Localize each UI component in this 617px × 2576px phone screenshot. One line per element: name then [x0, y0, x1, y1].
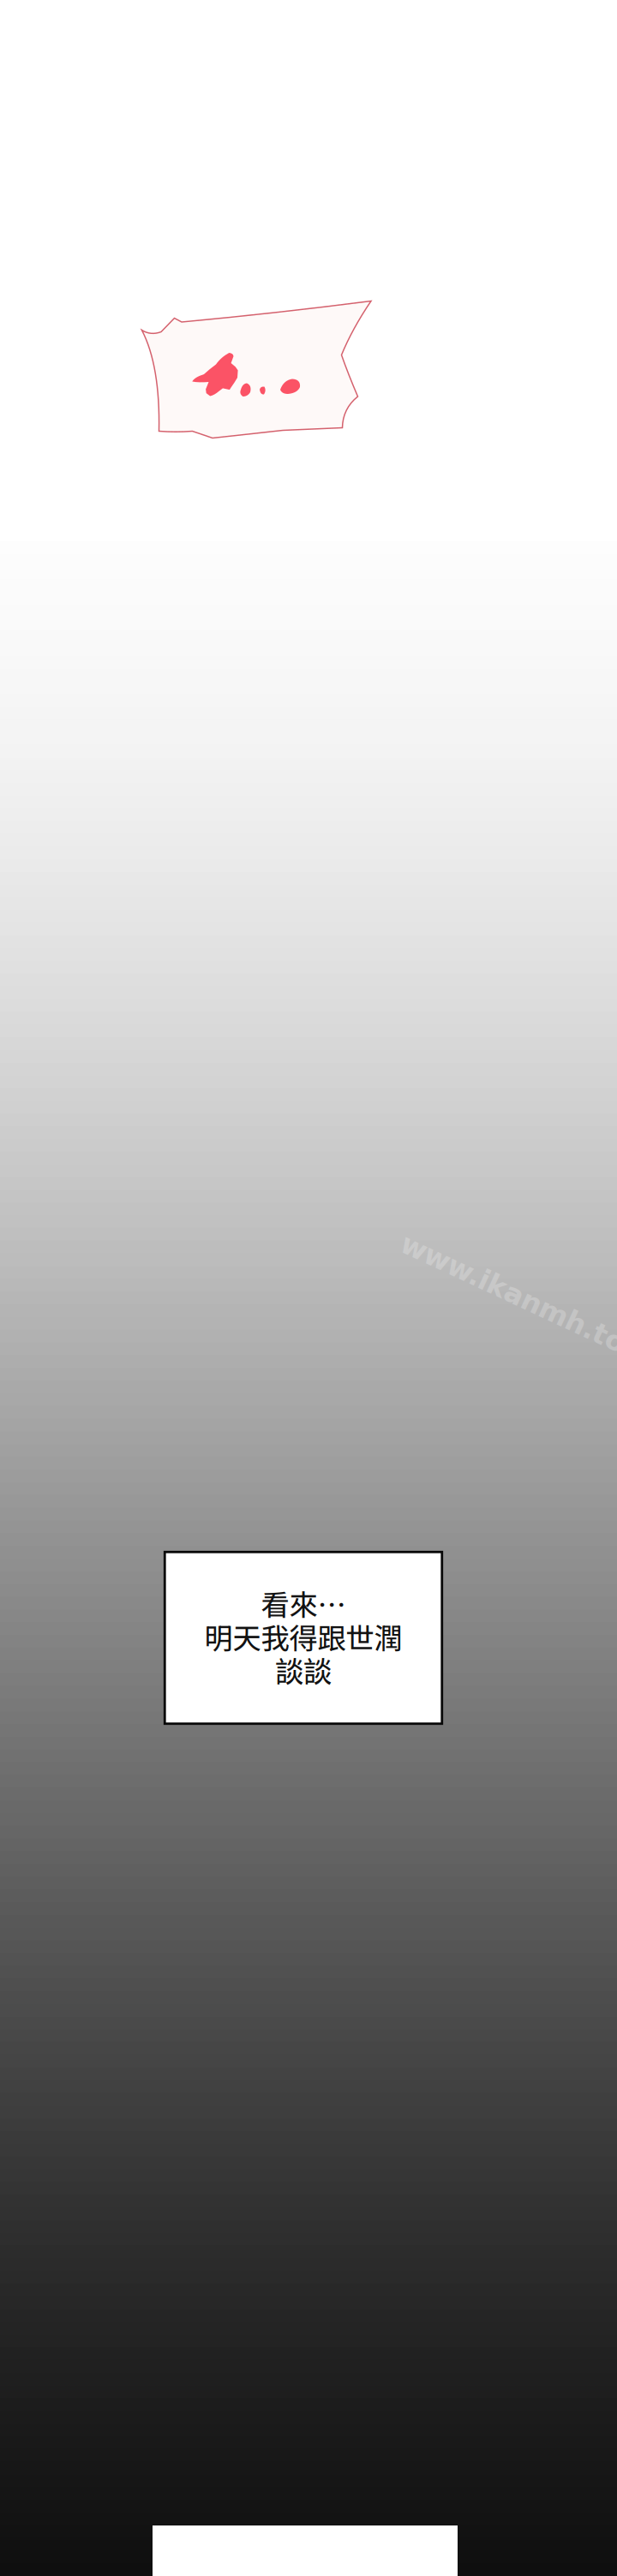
staticText: www.ikanmh.top [390, 1281, 617, 1314]
staticText: 明天我得跟世潤 [204, 1621, 402, 1655]
staticText: 談談 [275, 1654, 332, 1688]
staticText: 看來… [261, 1588, 346, 1621]
